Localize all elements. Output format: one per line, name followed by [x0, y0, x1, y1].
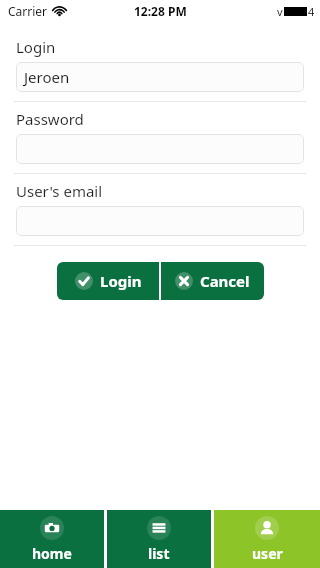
staticText: home: [32, 544, 72, 563]
button[interactable]: list: [107, 510, 211, 568]
staticText: v: [277, 4, 283, 19]
staticText: user: [252, 544, 283, 563]
staticText: 4: [308, 4, 315, 19]
staticText: Password: [16, 109, 84, 129]
button[interactable]: Login: [57, 262, 159, 300]
button[interactable]: Cancel: [161, 262, 264, 300]
button[interactable]: Password: [16, 134, 304, 164]
staticText: list: [148, 544, 170, 563]
button[interactable]: home: [0, 510, 104, 568]
button[interactable]: Login: [16, 62, 304, 92]
staticText: Carrier: [8, 3, 48, 19]
button[interactable]: User's email: [16, 206, 304, 236]
staticText: Jeroen: [24, 67, 70, 87]
button[interactable]: user: [214, 510, 320, 568]
staticText: User's email: [16, 181, 103, 201]
staticText: Login: [100, 271, 142, 291]
staticText: Login: [16, 37, 56, 57]
staticText: Cancel: [200, 271, 250, 291]
staticText: 12:28 PM: [134, 3, 187, 19]
